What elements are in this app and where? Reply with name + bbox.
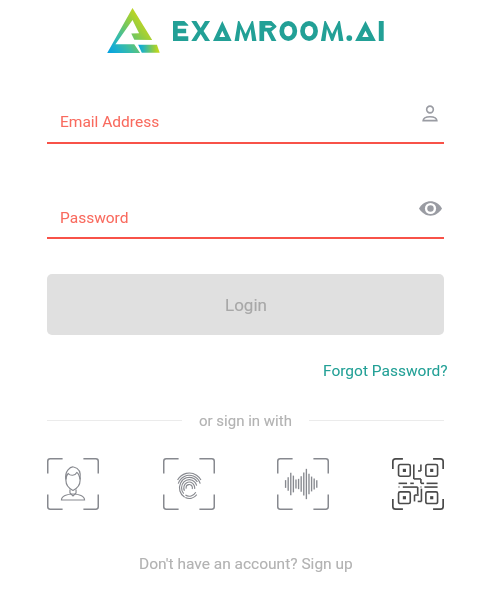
staticText: Don't have an account? Sign up: [139, 555, 353, 573]
button[interactable]: Password: [47, 198, 444, 239]
staticText: Forgot Password?: [323, 362, 448, 380]
staticText: Password: [60, 209, 129, 227]
button[interactable]: Sign in with fingerprint: [163, 458, 215, 510]
button[interactable]: Forgot Password?: [318, 359, 453, 383]
button[interactable]: Sign in with voice: [277, 458, 329, 510]
staticText: or sign in with: [199, 412, 292, 430]
button[interactable]: Email Address: [47, 103, 444, 144]
staticText: Email Address: [60, 113, 160, 131]
button[interactable]: Sign in with face: [47, 458, 99, 510]
other: User: [421, 105, 439, 123]
button[interactable]: Show password: [419, 200, 442, 217]
button[interactable]: Login: [47, 274, 444, 335]
staticText: Login: [225, 295, 267, 315]
other: EXAMROOM.AI: [173, 21, 385, 41]
button[interactable]: Sign in with QR code: [392, 458, 444, 510]
other: Examroom.ai logo: [104, 8, 160, 53]
button[interactable]: Don't have an account? Sign up: [133, 551, 359, 577]
